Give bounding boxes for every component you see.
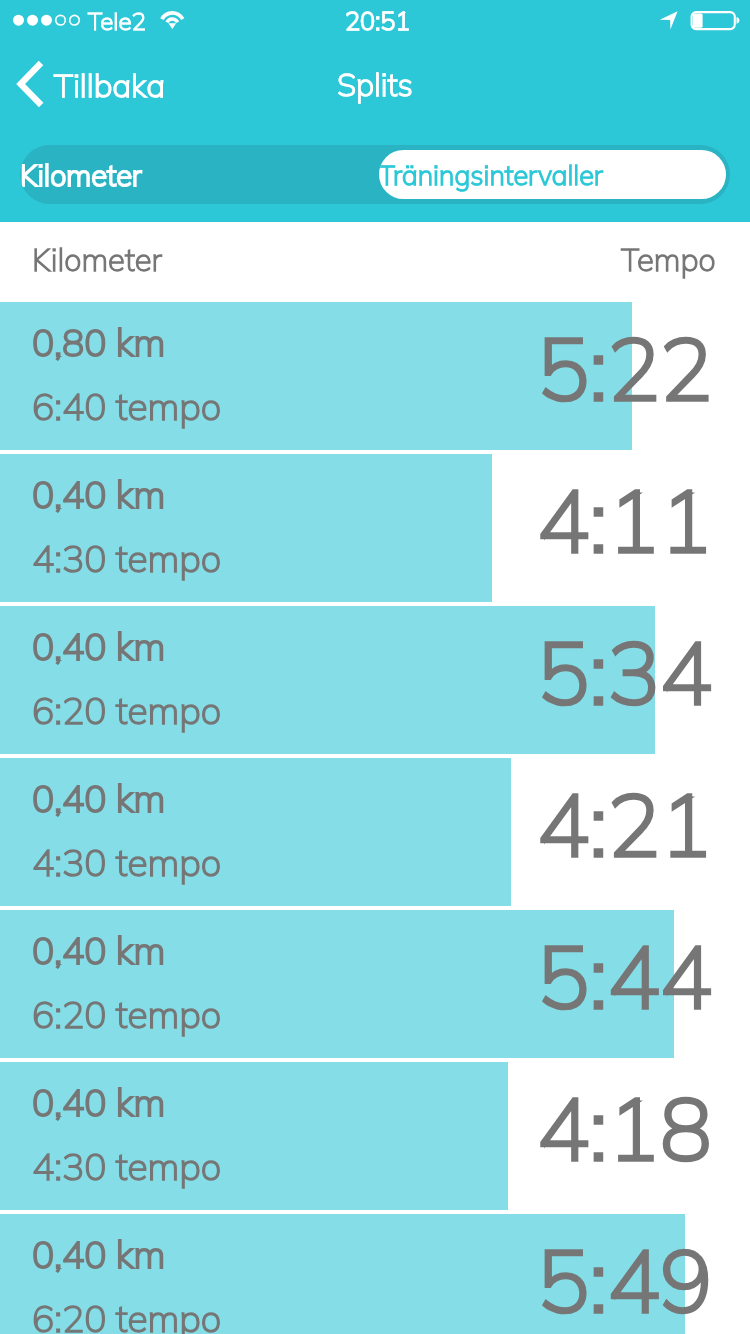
staticText: 0,80 km <box>32 319 750 365</box>
staticText: 6:20 tempo <box>32 1295 750 1334</box>
staticText: 4:21 <box>0 769 712 878</box>
staticText: Kilometer <box>20 157 379 193</box>
staticText: Tempo <box>621 240 750 279</box>
staticText: 0,40 km <box>32 623 750 669</box>
staticText: 5:44 <box>0 921 712 1030</box>
button[interactable]: 0,40 km <box>0 606 750 754</box>
staticText: 6:20 tempo <box>32 687 750 733</box>
staticText: 4:18 <box>0 1073 712 1182</box>
staticText: 4:30 tempo <box>32 839 750 885</box>
staticText: 0,40 km <box>32 471 750 517</box>
staticText: 20:51 <box>345 5 750 36</box>
staticText: Träningsintervaller <box>379 158 726 192</box>
staticText: 0,40 km <box>32 775 750 821</box>
staticText: 5:49 <box>0 1225 712 1334</box>
staticText: 5:49 <box>0 1225 712 1334</box>
button[interactable]: 0,80 km <box>0 302 750 450</box>
staticText: 4:11 <box>0 465 712 574</box>
staticText: 5:22 <box>0 313 712 422</box>
staticText: 4:30 tempo <box>32 535 750 581</box>
staticText: 6:40 tempo <box>32 383 750 429</box>
staticText: 5:34 <box>0 617 712 726</box>
staticText: Tempo <box>621 240 750 279</box>
staticText: 4:30 tempo <box>32 1143 750 1189</box>
button[interactable]: Tillbaka <box>4 52 180 114</box>
staticText: Kilometer <box>32 240 750 279</box>
staticText: 0,80 km <box>32 319 750 365</box>
staticText: 6:20 tempo <box>32 991 750 1037</box>
staticText: 4:30 tempo <box>32 1143 750 1189</box>
staticText: 0,40 km <box>32 1079 750 1125</box>
staticText: 5:22 <box>0 313 712 422</box>
staticText: Tillbaka <box>54 65 230 105</box>
button[interactable]: Träningsintervaller <box>379 150 726 199</box>
staticText: 4:30 tempo <box>32 535 750 581</box>
staticText: 4:30 tempo <box>32 839 750 885</box>
staticText: 20:51 <box>345 5 750 36</box>
staticText: Träningsintervaller <box>379 158 726 192</box>
staticText: 0,40 km <box>32 623 750 669</box>
staticText: Splits <box>0 65 750 104</box>
staticText: 4:18 <box>0 1073 712 1182</box>
staticText: 0,40 km <box>32 1231 750 1277</box>
staticText: Splits <box>0 65 750 104</box>
staticText: 4:21 <box>0 769 712 878</box>
staticText: Tele2 <box>88 6 750 36</box>
staticText: 0,40 km <box>32 1231 750 1277</box>
staticText: 5:34 <box>0 617 712 726</box>
staticText: 0,40 km <box>32 471 750 517</box>
staticText: 0,40 km <box>32 927 750 973</box>
staticText: 4:11 <box>0 465 712 574</box>
staticText: Kilometer <box>32 240 750 279</box>
staticText: Tele2 <box>88 6 750 36</box>
staticText: 5:44 <box>0 921 712 1030</box>
staticText: 0,40 km <box>32 1079 750 1125</box>
button[interactable]: 0,40 km <box>0 1214 750 1334</box>
staticText: 6:40 tempo <box>32 383 750 429</box>
staticText: 0,40 km <box>32 775 750 821</box>
staticText: 6:20 tempo <box>32 687 750 733</box>
button[interactable]: 0,40 km <box>0 758 750 906</box>
button[interactable]: Kilometer <box>20 145 379 204</box>
staticText: Tillbaka <box>54 65 230 105</box>
staticText: 6:20 tempo <box>32 1295 750 1334</box>
staticText: 6:20 tempo <box>32 991 750 1037</box>
staticText: 0,40 km <box>32 927 750 973</box>
button[interactable]: 0,40 km <box>0 1062 750 1210</box>
staticText: Kilometer <box>20 157 379 193</box>
button[interactable]: 0,40 km <box>0 454 750 602</box>
button[interactable]: 0,40 km <box>0 910 750 1058</box>
